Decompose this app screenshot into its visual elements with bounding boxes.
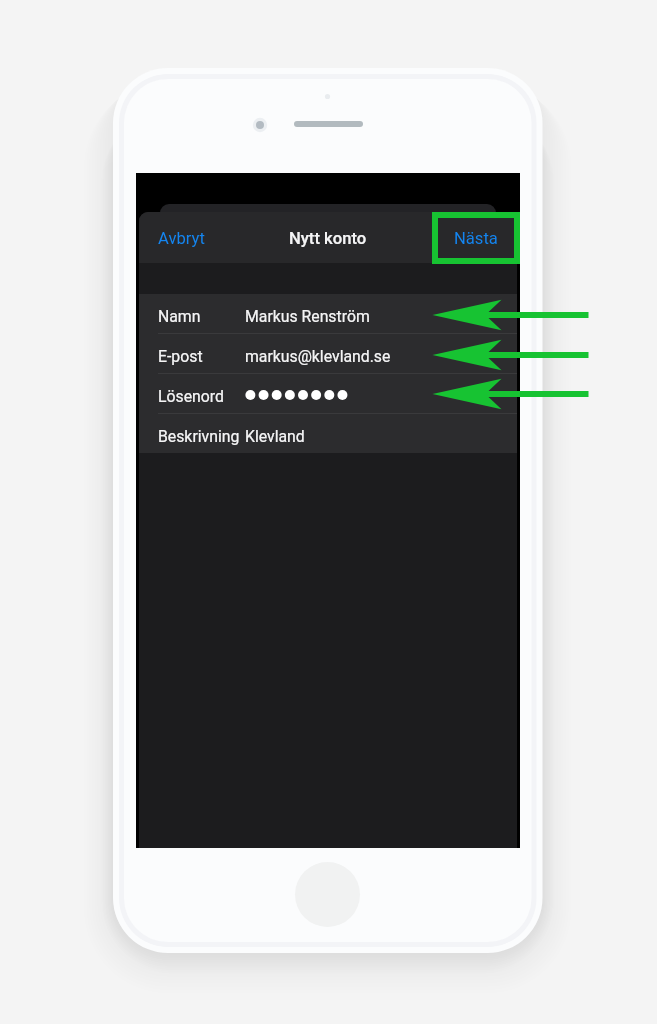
button[interactable]: Beskrivning xyxy=(139,414,517,453)
staticText: Avbryt xyxy=(158,229,205,248)
staticText: Nästa xyxy=(454,229,498,248)
staticText: Namn xyxy=(158,307,201,326)
other: Annotation arrow xyxy=(431,333,593,377)
other: Annotation arrow xyxy=(431,372,593,416)
button[interactable]: E-post xyxy=(139,334,517,373)
button[interactable]: Namn xyxy=(139,294,517,333)
staticText: Klevland xyxy=(245,427,305,446)
staticText: Beskrivning xyxy=(158,427,240,446)
staticText: Markus Renström xyxy=(245,307,370,326)
button[interactable]: Nästa xyxy=(435,215,517,260)
other: Highlight Nästa button xyxy=(432,212,520,264)
staticText: markus@klevland.se xyxy=(245,347,391,366)
button[interactable]: Lösenord xyxy=(139,374,517,413)
button[interactable]: Avbryt xyxy=(139,215,224,260)
other: Annotation arrow xyxy=(431,293,593,337)
staticText: Lösenord xyxy=(158,387,224,406)
staticText: E-post xyxy=(158,347,203,366)
staticText: Nytt konto xyxy=(289,229,367,248)
